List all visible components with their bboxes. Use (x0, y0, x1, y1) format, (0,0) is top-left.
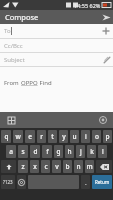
button[interactable]: k (87, 145, 96, 158)
staticText: v (55, 162, 59, 171)
staticText: a (9, 147, 13, 156)
staticText: r (40, 132, 43, 141)
staticText: Compose (5, 12, 39, 22)
staticText: l (102, 147, 104, 156)
staticText: t (51, 132, 54, 141)
button[interactable]: o (92, 130, 101, 143)
staticText: i (85, 132, 87, 141)
button[interactable]: e (25, 130, 35, 143)
staticText: 14:55 62% (74, 2, 101, 9)
button[interactable]: y (59, 130, 68, 143)
button[interactable]: Subject (0, 53, 100, 66)
button[interactable]: Cc/Bcc (0, 39, 113, 52)
staticText: b (65, 162, 70, 171)
button[interactable]: Shift (1, 160, 16, 173)
staticText: z (21, 162, 25, 171)
staticText: m (86, 162, 93, 171)
button[interactable]: t (48, 130, 57, 143)
button[interactable]: p (103, 130, 112, 143)
button[interactable]: x (30, 160, 39, 173)
button[interactable]: h (65, 145, 74, 158)
staticText: o (95, 132, 99, 141)
staticText: q (4, 132, 9, 141)
button[interactable]: f (42, 145, 52, 158)
button[interactable]: d (30, 145, 40, 158)
staticText: c (44, 162, 48, 171)
button[interactable]: w (13, 130, 23, 143)
staticText: Cc/Bcc (4, 42, 23, 50)
staticText: y (62, 132, 66, 141)
button[interactable]: r (37, 130, 46, 143)
button[interactable]: Attach file (100, 53, 113, 66)
button[interactable]: a (6, 145, 16, 158)
button[interactable]: u (70, 130, 79, 143)
staticText: e (28, 132, 32, 141)
staticText: u (72, 132, 77, 141)
button[interactable]: Send (99, 10, 113, 24)
staticText: g (56, 147, 61, 156)
button[interactable]: Return (92, 175, 112, 189)
staticText: From (4, 79, 21, 87)
button[interactable]: l (98, 145, 107, 158)
button[interactable]: v (52, 160, 61, 173)
button[interactable]: g (54, 145, 63, 158)
button[interactable]: j (76, 145, 85, 158)
staticText: j (80, 147, 82, 156)
staticText: . (85, 178, 87, 187)
button[interactable]: Keyboard layout (5, 114, 17, 126)
button[interactable]: ?123 (1, 175, 15, 189)
staticText: w (15, 132, 21, 141)
staticText: Return (95, 179, 110, 185)
button[interactable]: n (74, 160, 83, 173)
button[interactable]: Emoji (17, 175, 26, 189)
staticText: n (76, 162, 81, 171)
button[interactable]: q (1, 130, 11, 143)
staticText: Subject (4, 56, 25, 64)
staticText: d (33, 147, 38, 156)
staticText: ?123 (3, 179, 13, 185)
button[interactable]: m (85, 160, 94, 173)
staticText: OPPO (21, 79, 38, 87)
staticText: x (33, 162, 37, 171)
button[interactable]: z (18, 160, 28, 173)
staticText: f (46, 147, 49, 156)
staticText: To (4, 27, 11, 35)
button[interactable]: b (63, 160, 72, 173)
button[interactable]: Backspace (96, 160, 112, 173)
staticText: h (67, 147, 72, 156)
button[interactable]: Add recipient (99, 24, 113, 38)
button[interactable]: s (18, 145, 28, 158)
staticText: s (21, 147, 25, 156)
staticText: p (105, 132, 110, 141)
staticText: k (90, 147, 94, 156)
staticText: Find (38, 79, 52, 87)
button[interactable]: i (81, 130, 90, 143)
button[interactable]: c (41, 160, 50, 173)
button[interactable]: To (0, 24, 113, 38)
button[interactable]: Settings (97, 114, 109, 126)
button[interactable]: . (81, 175, 90, 189)
